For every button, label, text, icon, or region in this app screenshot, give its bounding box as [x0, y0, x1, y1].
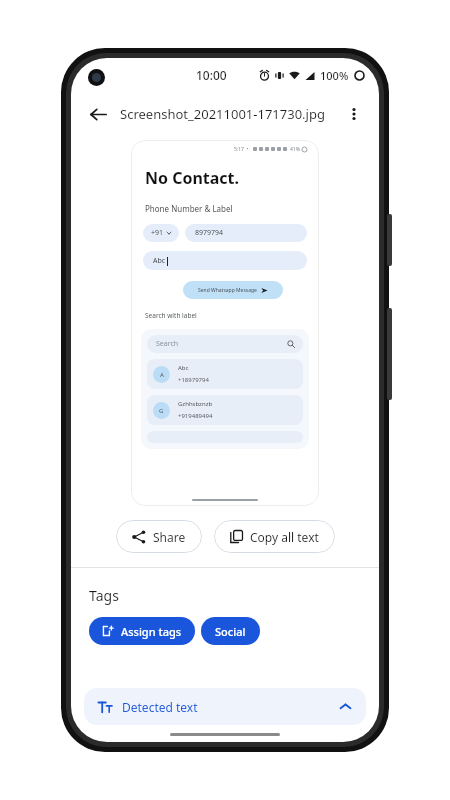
- button[interactable]: Back: [81, 97, 115, 131]
- staticText: Send Whatsapp Message: [198, 287, 257, 294]
- staticText: Abc: [178, 364, 189, 372]
- staticText: Phone Number & Label: [145, 203, 233, 214]
- staticText: Screenshot_20211001-171730.jpg: [120, 105, 339, 123]
- button[interactable]: Social: [201, 617, 260, 645]
- button[interactable]: Detected text: [84, 688, 366, 725]
- staticText: 5:17 •: [234, 146, 249, 153]
- staticText: 100%: [320, 68, 349, 83]
- staticText: Search with label: [145, 311, 197, 320]
- button[interactable]: A: [147, 359, 303, 389]
- staticText: 41%: [290, 146, 300, 153]
- button[interactable]: Copy all text: [214, 520, 335, 553]
- staticText: Copy all text: [250, 529, 319, 545]
- staticText: Search: [156, 339, 179, 349]
- button[interactable]: Assign tags: [89, 617, 195, 645]
- button[interactable]: Search: [147, 335, 303, 353]
- button[interactable]: Abc: [143, 251, 307, 270]
- staticText: A: [160, 371, 164, 379]
- staticText: +91: [151, 228, 164, 238]
- staticText: Social: [215, 624, 246, 639]
- button[interactable]: +91: [143, 224, 179, 242]
- button[interactable]: 8979794: [185, 224, 307, 242]
- staticText: G: [159, 407, 164, 415]
- staticText: +18979794: [178, 376, 209, 384]
- staticText: 10:00: [196, 67, 227, 83]
- staticText: Assign tags: [121, 624, 182, 639]
- staticText: Abc: [153, 256, 166, 266]
- button[interactable]: G: [147, 395, 303, 425]
- staticText: 8979794: [195, 228, 224, 238]
- button[interactable]: 5:17 •: [131, 140, 319, 506]
- button[interactable]: More options: [339, 99, 369, 129]
- button[interactable]: Share: [116, 520, 202, 553]
- staticText: Tags: [89, 586, 119, 605]
- staticText: No Contact.: [145, 167, 240, 189]
- button[interactable]: Send Whatsapp Message: [183, 281, 283, 299]
- staticText: +919489494: [178, 412, 213, 420]
- staticText: Share: [153, 529, 186, 545]
- staticText: Gzhhsbznzb: [178, 400, 213, 408]
- staticText: Detected text: [122, 699, 198, 715]
